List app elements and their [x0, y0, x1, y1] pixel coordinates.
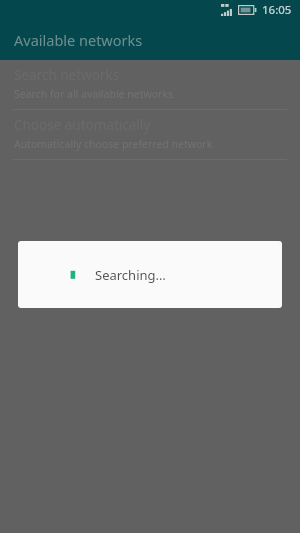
staticText: Available networks: [14, 30, 143, 50]
other: Mobile signal 4G: [221, 4, 234, 16]
staticText: Automatically choose preferred network: [14, 137, 213, 151]
staticText: 16:05: [262, 2, 292, 18]
button[interactable]: Loading: [18, 241, 282, 308]
staticText: Searching…: [95, 266, 166, 284]
other: Loading: [69, 270, 79, 280]
staticText: Search for all available networks: [14, 87, 174, 101]
other: Battery 50 percent: [238, 5, 257, 15]
